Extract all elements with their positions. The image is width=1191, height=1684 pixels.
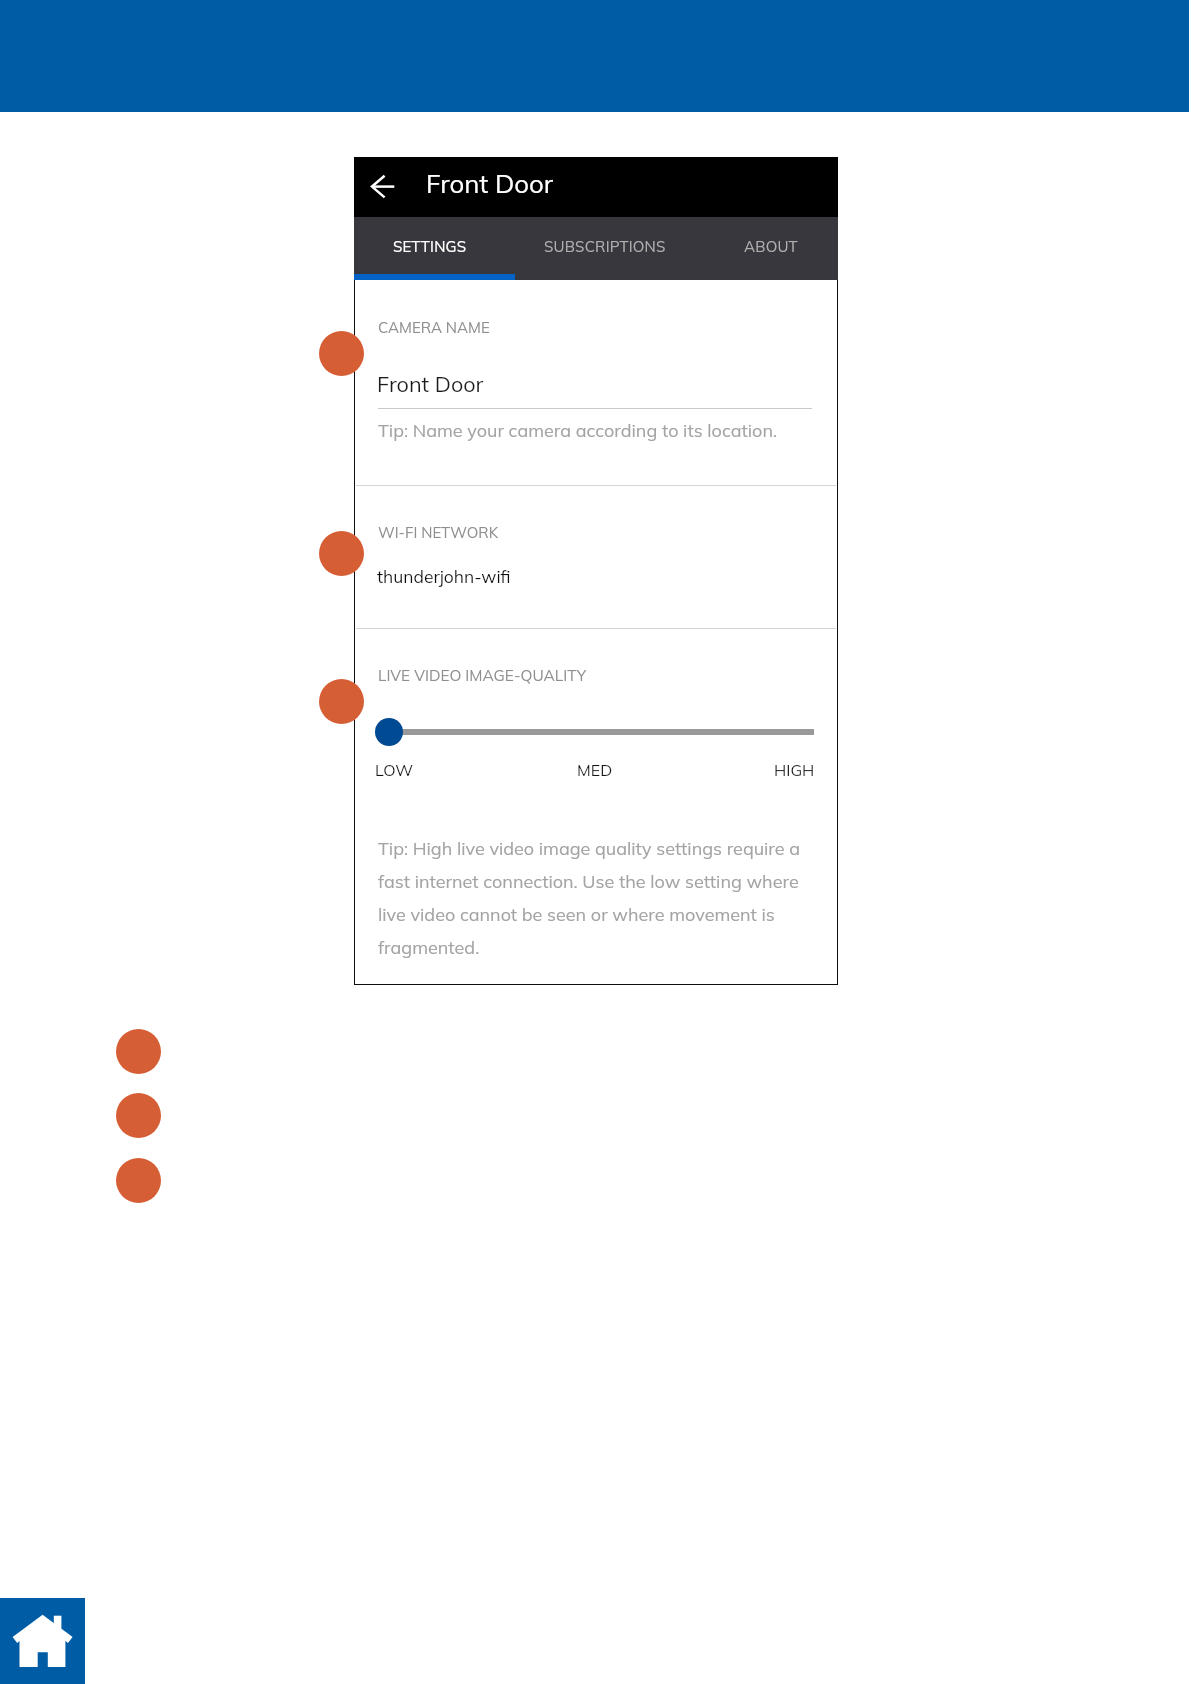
button[interactable]: Image quality slider [375, 718, 403, 746]
staticText: HIGH [774, 760, 815, 780]
staticText: CAMERA NAME [378, 318, 490, 337]
staticText: thunderjohn-wifi [377, 566, 511, 588]
button[interactable]: Home [0, 1598, 85, 1684]
button[interactable]: SETTINGS [355, 218, 505, 275]
staticText: WI-FI NETWORK [378, 523, 499, 542]
button[interactable]: Camera name [354, 281, 838, 485]
staticText: SETTINGS [393, 237, 467, 256]
staticText: ABOUT [744, 237, 798, 256]
staticText: Tip: High live video image quality setti… [378, 829, 805, 961]
button[interactable]: Back [364, 165, 407, 208]
button[interactable]: SUBSCRIPTIONS [530, 218, 680, 275]
staticText: Front Door [426, 167, 554, 199]
staticText: SUBSCRIPTIONS [544, 237, 666, 256]
staticText: Front Door [377, 370, 484, 397]
staticText: MED [577, 760, 613, 780]
staticText: LIVE VIDEO IMAGE-QUALITY [378, 666, 587, 685]
button[interactable]: ABOUT [696, 218, 846, 275]
button[interactable]: Wi-Fi network [354, 486, 838, 628]
staticText: LOW [375, 760, 414, 780]
staticText: Tip: Name your camera according to its l… [378, 419, 778, 442]
